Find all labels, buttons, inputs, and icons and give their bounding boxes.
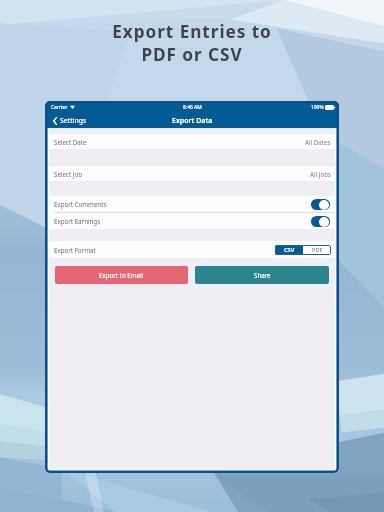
staticText: All Dates [305,138,331,146]
button[interactable]: PDF [303,245,331,255]
staticText: Export Comments [54,200,107,208]
staticText: Export Entries to PDF or CSV [112,20,272,66]
button[interactable]: CSV [275,245,303,255]
button[interactable]: Select Job [49,166,335,181]
button[interactable]: Share [195,266,329,284]
button[interactable]: Export Earnings [49,213,335,229]
staticText: Share [254,271,271,279]
staticText: Export Earnings [54,217,101,225]
staticText: Select Job [54,170,83,178]
staticText: Settings [60,116,87,125]
staticText: Select Date [54,138,87,146]
staticText: Carrier [51,104,68,111]
button[interactable]: Export to Email [55,266,188,284]
staticText: PDF [312,246,323,254]
staticText: Export Format [54,246,96,254]
staticText: 8:46 AM [183,104,202,111]
staticText: 100% [311,104,324,111]
button[interactable]: Back [53,116,87,125]
staticText: CSV [284,246,295,254]
button[interactable]: Export Comments [49,196,335,212]
button[interactable]: Select Date [49,134,335,149]
staticText: All Jobs [310,170,331,178]
staticText: Export to Email [99,271,144,279]
other: Back [53,117,57,125]
staticText: Export Data [172,116,213,126]
